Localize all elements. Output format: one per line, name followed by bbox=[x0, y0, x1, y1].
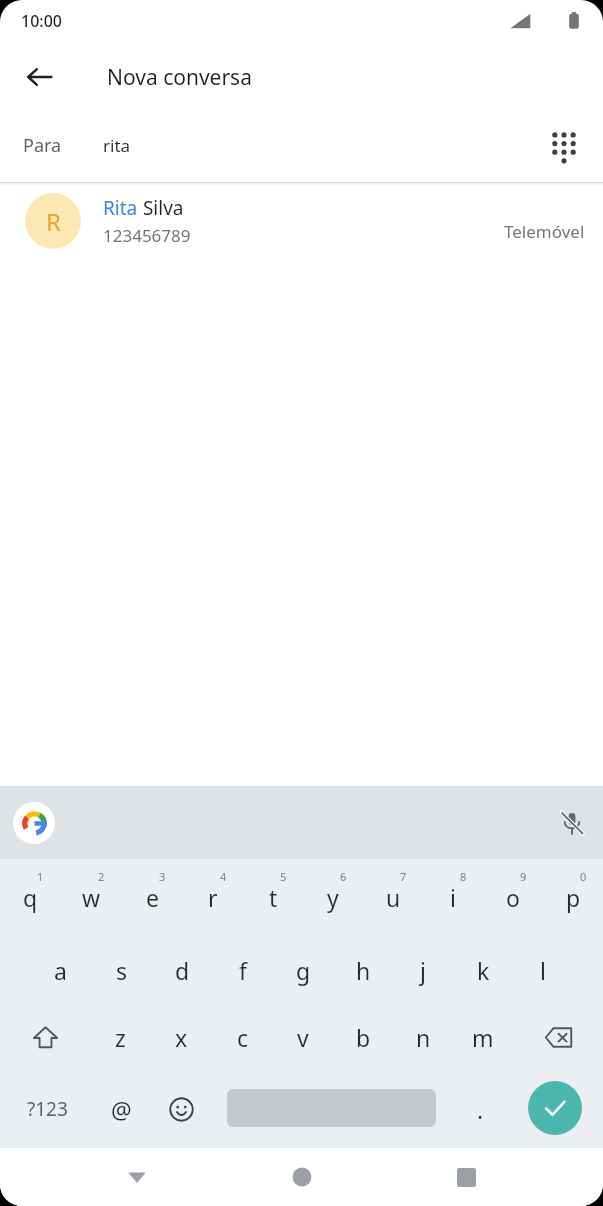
staticText: rita bbox=[103, 134, 131, 157]
button[interactable]: ?123 bbox=[12, 1084, 82, 1134]
button[interactable]: Backspace bbox=[513, 1018, 603, 1056]
staticText: w bbox=[82, 882, 101, 913]
staticText: x bbox=[175, 1022, 188, 1053]
staticText: Rita bbox=[103, 195, 138, 221]
staticText: 8 bbox=[460, 869, 467, 884]
button[interactable]: Home bbox=[273, 1148, 331, 1206]
button[interactable]: . bbox=[455, 1084, 505, 1134]
staticText: 7 bbox=[400, 869, 407, 884]
button[interactable]: b bbox=[333, 1018, 393, 1056]
button[interactable]: j bbox=[393, 953, 453, 987]
button[interactable]: Back bbox=[108, 1148, 166, 1206]
staticText: o bbox=[506, 882, 520, 913]
button[interactable]: 6 bbox=[303, 869, 363, 923]
staticText: Para bbox=[23, 133, 62, 158]
staticText: i bbox=[450, 882, 456, 913]
staticText: y bbox=[327, 882, 339, 913]
staticText: n bbox=[416, 1022, 431, 1053]
button[interactable]: R bbox=[0, 185, 603, 257]
staticText: ?123 bbox=[27, 1096, 68, 1122]
button[interactable]: 4 bbox=[183, 869, 243, 923]
button[interactable]: h bbox=[333, 953, 393, 987]
button[interactable]: Voice input off bbox=[549, 800, 595, 846]
staticText: d bbox=[175, 955, 190, 986]
staticText: 1 bbox=[37, 869, 44, 884]
button[interactable]: 5 bbox=[243, 869, 303, 923]
button[interactable]: 2 bbox=[61, 869, 122, 923]
staticText: 4 bbox=[220, 869, 227, 884]
button[interactable]: 0 bbox=[543, 869, 603, 923]
button[interactable]: 3 bbox=[122, 869, 183, 923]
staticText: u bbox=[386, 882, 401, 913]
staticText: r bbox=[208, 882, 218, 913]
staticText: q bbox=[23, 882, 38, 913]
button[interactable]: s bbox=[91, 953, 152, 987]
staticText: Telemóvel bbox=[504, 220, 585, 243]
button[interactable]: v bbox=[273, 1018, 333, 1056]
staticText: 5 bbox=[280, 869, 287, 884]
staticText: t bbox=[269, 882, 278, 913]
button[interactable]: 7 bbox=[363, 869, 423, 923]
button[interactable]: Recent apps bbox=[437, 1148, 495, 1206]
staticText: R bbox=[46, 205, 61, 238]
button[interactable]: Emoji bbox=[156, 1084, 206, 1134]
staticText: m bbox=[472, 1022, 494, 1053]
button[interactable]: Send bbox=[528, 1081, 582, 1135]
staticText: a bbox=[54, 955, 67, 986]
button[interactable]: f bbox=[213, 953, 273, 987]
button[interactable]: c bbox=[212, 1018, 273, 1056]
button[interactable]: 9 bbox=[483, 869, 543, 923]
staticText: z bbox=[115, 1022, 126, 1053]
button[interactable]: k bbox=[453, 953, 513, 987]
staticText: g bbox=[296, 955, 311, 986]
staticText: @ bbox=[111, 1094, 132, 1125]
staticText: 10:00 bbox=[21, 10, 62, 32]
staticText: v bbox=[297, 1022, 309, 1053]
staticText: h bbox=[356, 955, 371, 986]
staticText: s bbox=[116, 955, 128, 986]
staticText: Silva bbox=[138, 195, 184, 221]
staticText: . bbox=[477, 1094, 484, 1125]
button[interactable]: Back bbox=[14, 51, 66, 103]
staticText: 9 bbox=[520, 869, 527, 884]
button[interactable]: n bbox=[393, 1018, 453, 1056]
staticText: 3 bbox=[159, 869, 166, 884]
staticText: k bbox=[477, 955, 490, 986]
staticText: 123456789 bbox=[103, 224, 191, 247]
button[interactable]: 8 bbox=[423, 869, 483, 923]
staticText: j bbox=[420, 955, 426, 986]
button[interactable]: g bbox=[273, 953, 333, 987]
button[interactable]: Dialpad bbox=[535, 116, 593, 174]
button[interactable]: @ bbox=[96, 1084, 146, 1134]
button[interactable]: Google bbox=[13, 802, 55, 844]
staticText: c bbox=[237, 1022, 249, 1053]
button[interactable]: a bbox=[30, 953, 91, 987]
button[interactable]: x bbox=[151, 1018, 212, 1056]
staticText: f bbox=[239, 955, 247, 986]
button[interactable]: z bbox=[90, 1018, 151, 1056]
staticText: e bbox=[146, 882, 159, 913]
button[interactable]: 1 bbox=[0, 869, 61, 923]
staticText: p bbox=[566, 882, 581, 913]
staticText: b bbox=[356, 1022, 371, 1053]
staticText: 6 bbox=[340, 869, 347, 884]
staticText: 2 bbox=[98, 869, 105, 884]
button[interactable]: l bbox=[513, 953, 573, 987]
button[interactable]: m bbox=[453, 1018, 513, 1056]
staticText: 0 bbox=[580, 869, 587, 884]
button[interactable]: Shift bbox=[0, 1018, 90, 1056]
button[interactable]: d bbox=[152, 953, 213, 987]
staticText: l bbox=[540, 955, 546, 986]
staticText: Nova conversa bbox=[107, 63, 252, 92]
